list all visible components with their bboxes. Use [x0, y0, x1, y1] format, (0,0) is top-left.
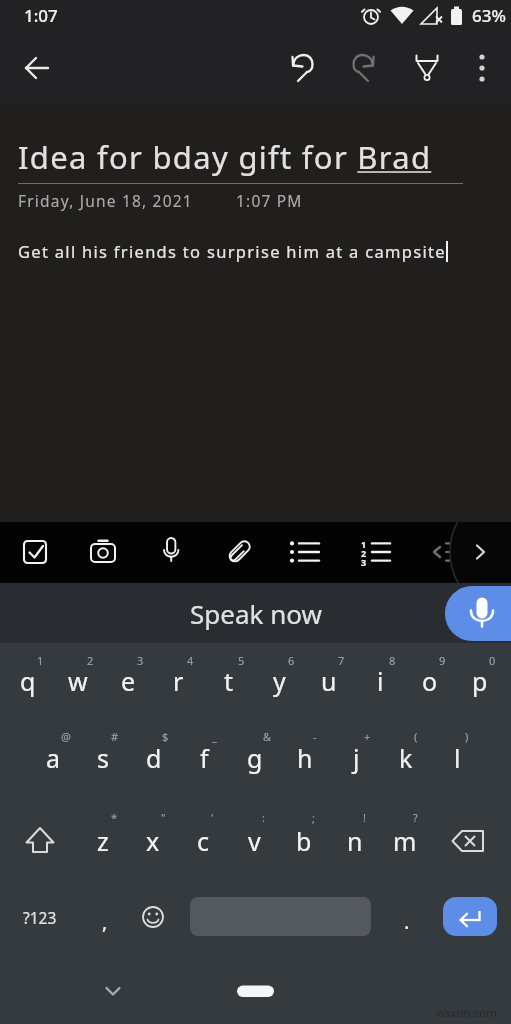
button[interactable]: p	[456, 654, 504, 708]
staticText: s	[97, 741, 109, 775]
button[interactable]: i	[356, 654, 404, 708]
button[interactable]: j	[332, 731, 380, 785]
button[interactable]: a	[29, 731, 77, 785]
staticText: .	[404, 908, 410, 935]
staticText: l	[454, 741, 461, 775]
staticText: 3	[137, 653, 144, 668]
staticText: Idea for bday gift for Brad	[18, 136, 432, 178]
staticText: 6	[288, 653, 295, 668]
button[interactable]: s	[79, 731, 127, 785]
staticText: $	[162, 729, 169, 744]
staticText: i	[377, 664, 384, 698]
staticText: 9	[439, 653, 446, 668]
staticText: k	[399, 741, 413, 775]
button[interactable]: m	[381, 814, 429, 868]
staticText: f	[200, 741, 209, 775]
staticText: j	[353, 741, 360, 775]
staticText: Friday, June 18, 2021	[18, 190, 193, 211]
staticText: 1:07 PM	[236, 190, 303, 211]
button[interactable]	[15, 46, 59, 90]
button[interactable]	[460, 46, 504, 90]
staticText: &	[263, 729, 272, 744]
button[interactable]: e	[104, 654, 152, 708]
button[interactable]	[280, 46, 324, 90]
staticText: 0	[489, 653, 496, 668]
button[interactable]: n	[331, 814, 379, 868]
staticText: (	[414, 729, 418, 744]
staticText: ;	[312, 810, 315, 825]
staticText: 5	[238, 653, 245, 668]
staticText: -	[313, 729, 317, 744]
staticText: y	[273, 664, 286, 698]
button[interactable]	[281, 526, 333, 578]
staticText: 7	[338, 653, 345, 668]
button[interactable]	[77, 526, 129, 578]
staticText: #	[111, 729, 119, 744]
button[interactable]	[9, 526, 61, 578]
button[interactable]	[342, 46, 386, 90]
staticText: n	[347, 824, 363, 858]
staticText: wsxdn.com	[436, 1005, 497, 1021]
staticText: 3	[361, 556, 367, 568]
button[interactable]: b	[280, 814, 328, 868]
button[interactable]: .	[387, 898, 427, 944]
button[interactable]: y	[255, 654, 303, 708]
staticText: +	[364, 729, 371, 744]
staticText: g	[247, 741, 263, 775]
staticText: ?	[413, 810, 418, 825]
staticText: 8	[389, 653, 396, 668]
staticText: 2	[361, 547, 367, 559]
staticText: o	[422, 664, 438, 698]
button[interactable]: q	[4, 654, 52, 708]
staticText: ,	[102, 908, 108, 935]
button[interactable]: z	[79, 814, 127, 868]
button[interactable]: c	[179, 814, 227, 868]
staticText: t	[224, 664, 234, 698]
button[interactable]: ,	[85, 898, 125, 944]
staticText: p	[472, 664, 488, 698]
button[interactable]	[349, 526, 401, 578]
button[interactable]: g	[231, 731, 279, 785]
button[interactable]: d	[130, 731, 178, 785]
button[interactable]	[452, 524, 508, 580]
staticText: c	[197, 824, 210, 858]
button[interactable]: o	[406, 654, 454, 708]
staticText: Speak now	[190, 596, 322, 631]
staticText: 1	[361, 538, 367, 550]
button[interactable]: x	[129, 814, 177, 868]
staticText: '	[211, 810, 214, 825]
staticText: v	[248, 824, 261, 858]
staticText: 63%	[472, 4, 506, 27]
staticText: b	[296, 824, 312, 858]
staticText: 4	[187, 653, 194, 668]
staticText: w	[68, 664, 88, 698]
button[interactable]: h	[281, 731, 329, 785]
button[interactable]	[405, 46, 449, 90]
staticText: 1:07	[24, 4, 58, 27]
staticText: ?123	[23, 907, 57, 928]
staticText: *	[111, 810, 118, 825]
button[interactable]: f	[180, 731, 228, 785]
button[interactable]: l	[433, 731, 481, 785]
button[interactable]: k	[382, 731, 430, 785]
button[interactable]	[445, 586, 511, 641]
staticText: a	[46, 741, 61, 775]
button[interactable]	[213, 526, 265, 578]
button[interactable]: ?123	[12, 894, 68, 940]
staticText: h	[297, 741, 313, 775]
staticText: e	[121, 664, 136, 698]
button[interactable]: v	[230, 814, 278, 868]
button[interactable]: u	[305, 654, 353, 708]
button[interactable]: t	[205, 654, 253, 708]
staticText: x	[146, 824, 160, 858]
staticText: Get all his friends to surprise him at a…	[18, 240, 446, 262]
staticText: 2	[87, 653, 94, 668]
button[interactable]	[443, 897, 497, 936]
staticText: d	[146, 741, 162, 775]
staticText: !	[363, 810, 366, 825]
button[interactable]: r	[154, 654, 202, 708]
button[interactable]: w	[54, 654, 102, 708]
staticText: :	[262, 810, 265, 825]
button[interactable]	[145, 526, 197, 578]
